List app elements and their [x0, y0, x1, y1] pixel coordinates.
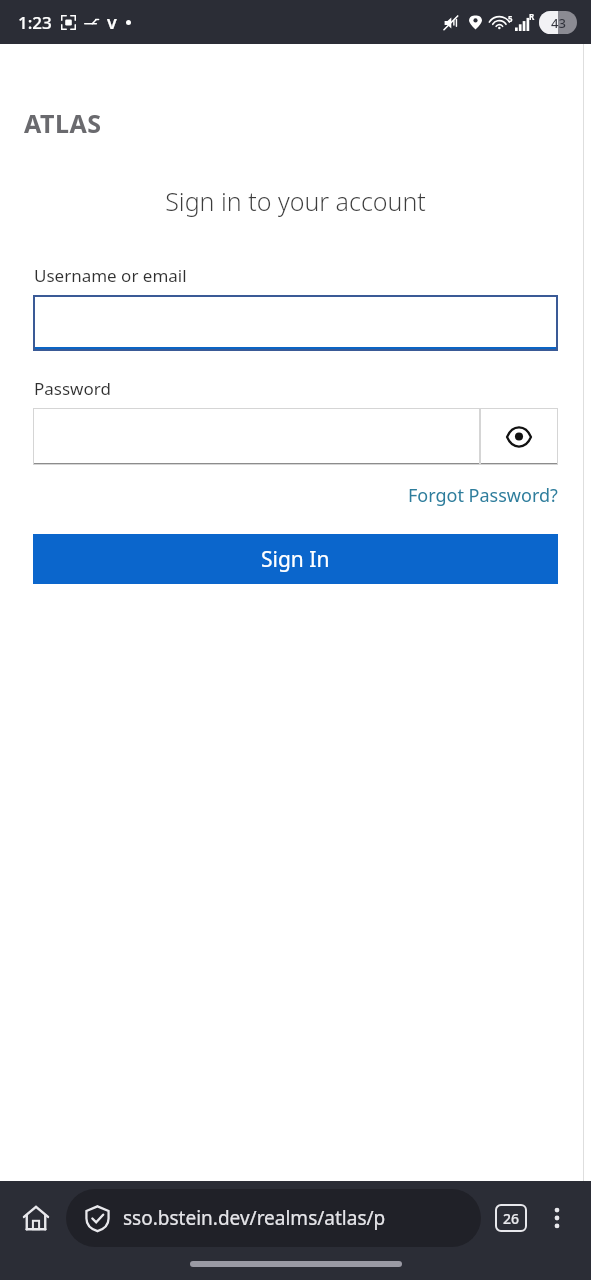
staticText: 43: [551, 14, 566, 32]
staticText: 1:23: [18, 11, 52, 34]
button[interactable]: Sign In: [33, 534, 558, 584]
staticText: Sign in to your account: [0, 184, 591, 218]
staticText: V: [107, 13, 117, 33]
staticText: Password: [34, 377, 111, 400]
button[interactable]: Show password: [480, 408, 558, 465]
button[interactable]: [33, 295, 558, 351]
staticText: sso.bstein.dev/realms/atlas/p: [123, 1205, 386, 1231]
staticText: Forgot Password?: [408, 483, 558, 508]
button[interactable]: Forgot Password?: [408, 483, 558, 508]
staticText: 5: [508, 13, 513, 24]
staticText: Sign In: [261, 545, 330, 574]
staticText: R: [529, 11, 535, 22]
staticText: 26: [503, 1209, 520, 1228]
button[interactable]: Home: [14, 1196, 58, 1240]
staticText: ATLAS: [24, 106, 102, 140]
button[interactable]: sso.bstein.dev/realms/atlas/p: [66, 1189, 481, 1247]
button[interactable]: Tabs, 26 open: [491, 1198, 531, 1238]
button[interactable]: More options: [537, 1198, 577, 1238]
button[interactable]: [33, 408, 480, 465]
staticText: Username or email: [34, 264, 187, 287]
